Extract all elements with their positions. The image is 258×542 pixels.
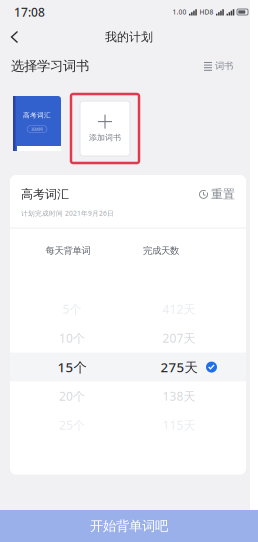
button[interactable]: 15个 (10, 353, 246, 382)
button[interactable]: 20个 (10, 382, 246, 411)
staticText: 25个 (59, 417, 85, 433)
staticText: 412天 (162, 301, 195, 317)
staticText: 17:08 (14, 4, 45, 20)
staticText: 5个 (62, 301, 81, 317)
staticText: 高考词汇 (21, 187, 69, 202)
staticText: 计划完成时间 2021年9月26日 (21, 209, 114, 218)
staticText: 20个 (59, 388, 85, 404)
staticText: 完成天数 (143, 245, 179, 256)
button[interactable]: 10个 (10, 324, 246, 353)
button[interactable]: Back (0, 23, 40, 51)
staticText: HD8 (199, 8, 213, 16)
staticText: 每天背单词 (45, 245, 90, 256)
button[interactable]: 添加词书 (71, 94, 139, 163)
staticText: 开始背单词吧 (90, 518, 168, 534)
staticText: 我的计划 (105, 30, 153, 44)
staticText: 10个 (59, 330, 85, 346)
staticText: 词书 (215, 60, 233, 72)
staticText: 207天 (162, 330, 195, 346)
staticText: 1.00 (172, 8, 186, 16)
button[interactable]: 重置 (199, 184, 235, 205)
button[interactable]: 词书 (202, 56, 235, 76)
staticText: 138天 (162, 388, 195, 404)
staticText: 3500词 (31, 126, 43, 132)
staticText: 15个 (57, 358, 86, 376)
staticText: 选择学习词书 (11, 58, 89, 74)
staticText: 275天 (160, 358, 197, 376)
staticText: 高考词汇 (23, 111, 51, 119)
button[interactable]: 开始背单词吧 (0, 510, 258, 542)
staticText: 115天 (162, 417, 195, 433)
staticText: 添加词书 (89, 133, 121, 142)
staticText: 重置 (211, 187, 235, 202)
